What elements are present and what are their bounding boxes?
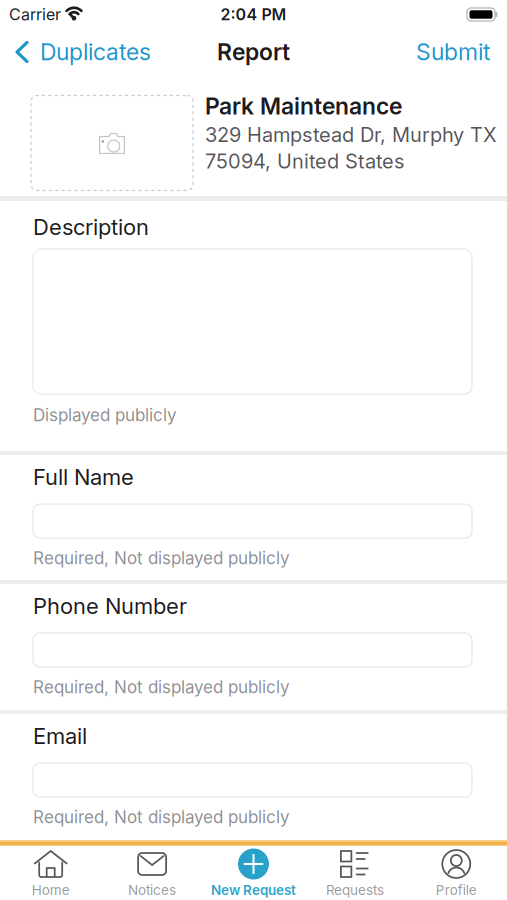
staticText: New Request (211, 882, 296, 898)
staticText: Submit (416, 38, 490, 66)
staticText: Carrier (9, 5, 61, 24)
staticText: Park Maintenance (205, 92, 402, 120)
staticText: Required, Not displayed publicly (33, 548, 290, 568)
button[interactable]: Add photo (31, 95, 193, 190)
staticText: Profile (436, 882, 477, 898)
button[interactable]: Home (0, 846, 101, 900)
button[interactable]: Notices (101, 846, 203, 900)
button[interactable]: New Request (203, 846, 304, 900)
staticText: Notices (128, 882, 176, 898)
staticText: Requests (326, 882, 384, 898)
button[interactable]: Requests (304, 846, 406, 900)
staticText: Report (217, 38, 290, 66)
staticText: Email (33, 723, 87, 749)
staticText: Description (33, 214, 149, 240)
staticText: Full Name (33, 464, 134, 490)
staticText: Home (32, 882, 70, 898)
staticText: 75094, United States (205, 149, 404, 173)
button[interactable]: Back (0, 38, 151, 66)
staticText: 329 Hampstead Dr, Murphy TX (205, 123, 497, 146)
button[interactable]: Submit (416, 38, 507, 66)
staticText: 2:04 PM (220, 5, 286, 24)
button[interactable]: Profile (406, 846, 507, 900)
staticText: Displayed publicly (33, 405, 177, 425)
staticText: Required, Not displayed publicly (33, 677, 290, 697)
staticText: Required, Not displayed publicly (33, 807, 290, 827)
staticText: Phone Number (33, 593, 187, 619)
staticText: Duplicates (40, 38, 151, 66)
